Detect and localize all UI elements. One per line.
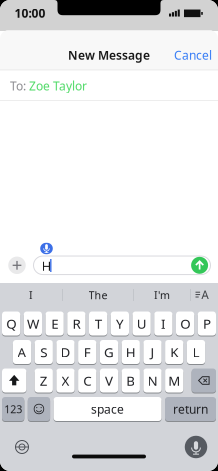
staticText: W	[27, 315, 39, 332]
button[interactable]: H	[122, 339, 140, 364]
staticText: K	[170, 343, 178, 361]
staticText: H	[41, 257, 51, 274]
button[interactable]: C	[78, 368, 96, 393]
button[interactable]	[0, 0, 218, 471]
staticText: Cancel	[174, 47, 212, 63]
staticText: I	[29, 288, 33, 302]
staticText: O	[180, 315, 190, 332]
button[interactable]: I'm	[0, 0, 218, 471]
button[interactable]: 123	[2, 396, 24, 421]
staticText: The	[88, 288, 107, 302]
staticText: New Message	[68, 47, 150, 63]
button[interactable]: E	[45, 311, 64, 336]
button[interactable]	[0, 0, 218, 471]
staticText: return	[173, 401, 208, 417]
staticText: To:	[10, 78, 26, 94]
button[interactable]: A	[13, 339, 31, 364]
staticText: D	[60, 343, 70, 361]
button[interactable]: Y	[111, 311, 129, 336]
staticText: A	[201, 287, 209, 303]
button[interactable]: U	[132, 311, 151, 336]
staticText: S	[40, 343, 47, 361]
staticText: J	[150, 343, 154, 361]
staticText: E	[51, 315, 58, 332]
button[interactable]: space	[54, 396, 161, 421]
staticText: P	[203, 315, 211, 332]
button[interactable]: K	[165, 339, 183, 364]
staticText: Z	[40, 372, 48, 389]
button[interactable]: V	[100, 368, 118, 393]
staticText: U	[137, 315, 147, 332]
button[interactable]	[0, 0, 218, 471]
staticText: X	[61, 372, 69, 389]
button[interactable]: S	[35, 339, 53, 364]
button[interactable]: A	[0, 0, 218, 471]
staticText: C	[83, 372, 91, 389]
button[interactable]: R	[67, 311, 85, 336]
button[interactable]: D	[56, 339, 75, 364]
button[interactable]: To:	[0, 70, 218, 101]
staticText: R	[72, 315, 80, 332]
staticText: F	[84, 343, 91, 361]
staticText: M	[168, 372, 180, 389]
button[interactable]	[2, 368, 26, 393]
staticText: T	[95, 315, 102, 332]
button[interactable]: Q	[2, 311, 20, 336]
button[interactable]	[28, 396, 50, 421]
staticText: A	[17, 343, 26, 361]
button[interactable]: F	[78, 339, 96, 364]
button[interactable]	[0, 0, 218, 471]
button[interactable]: O	[176, 311, 194, 336]
button[interactable]: The	[0, 0, 218, 471]
button[interactable]: N	[143, 368, 162, 393]
staticText: 10:00	[14, 5, 45, 21]
button[interactable]: P	[198, 311, 216, 336]
button[interactable]: I	[154, 311, 172, 336]
staticText: N	[147, 372, 157, 389]
staticText: L	[192, 343, 199, 361]
staticText: G	[104, 343, 114, 361]
staticText: I'm	[154, 288, 170, 302]
button[interactable]: B	[122, 368, 140, 393]
staticText: H	[126, 343, 136, 361]
button[interactable]: X	[56, 368, 75, 393]
button[interactable]: G	[100, 339, 118, 364]
button[interactable]: Cancel	[0, 30, 218, 70]
staticText: B	[126, 372, 135, 389]
button[interactable]: I	[0, 0, 218, 471]
button[interactable]: Z	[35, 368, 53, 393]
staticText: Q	[6, 315, 16, 332]
staticText: space	[91, 401, 124, 417]
staticText: Zoe Taylor	[29, 78, 87, 94]
button[interactable]	[0, 0, 218, 471]
button[interactable]: M	[165, 368, 183, 393]
button[interactable]: T	[89, 311, 107, 336]
button[interactable]: return	[165, 396, 216, 421]
button[interactable]: J	[143, 339, 162, 364]
button[interactable]: L	[187, 339, 205, 364]
staticText: Y	[116, 315, 124, 332]
button[interactable]	[0, 0, 218, 471]
staticText: V	[105, 372, 113, 389]
staticText: I	[161, 315, 166, 332]
button[interactable]	[192, 368, 216, 393]
button[interactable]: W	[24, 311, 42, 336]
staticText: 123	[4, 402, 22, 416]
